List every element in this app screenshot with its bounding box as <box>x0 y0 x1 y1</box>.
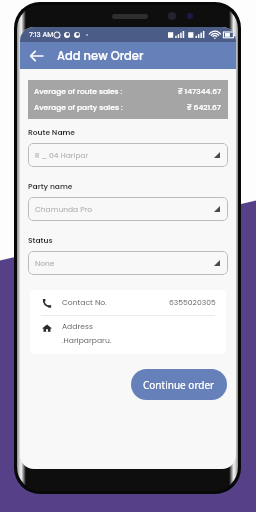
staticText: Address <box>62 321 93 332</box>
staticText: None <box>35 258 55 268</box>
button[interactable]: Continue order <box>131 369 227 400</box>
staticText: Add new Order <box>57 48 144 64</box>
staticText: 7:13 AM <box>29 30 54 40</box>
staticText: Continue order <box>143 378 215 392</box>
staticText: Status <box>28 235 53 245</box>
button[interactable]: Chamunda Pro <box>28 197 228 221</box>
staticText: ₹ 6421.67 <box>187 102 222 112</box>
staticText: Average of party sales : <box>34 102 123 112</box>
button[interactable]: None <box>28 251 228 275</box>
button[interactable]: R _ 04 Haripar <box>28 143 228 167</box>
staticText: R _ 04 Haripar <box>35 150 89 160</box>
staticText: ₹ 147344.67 <box>178 86 222 96</box>
staticText: 6355020305 <box>169 297 216 308</box>
staticText: Average of route sales : <box>34 86 123 96</box>
staticText: Route Name <box>28 127 75 137</box>
button[interactable]: Contact No. <box>30 290 226 315</box>
staticText: .Hariparparu. <box>62 335 112 346</box>
staticText: Chamunda Pro <box>35 204 93 214</box>
staticText: Contact No. <box>62 297 107 308</box>
button[interactable]: Back <box>29 48 45 64</box>
staticText: Party name <box>28 181 73 191</box>
